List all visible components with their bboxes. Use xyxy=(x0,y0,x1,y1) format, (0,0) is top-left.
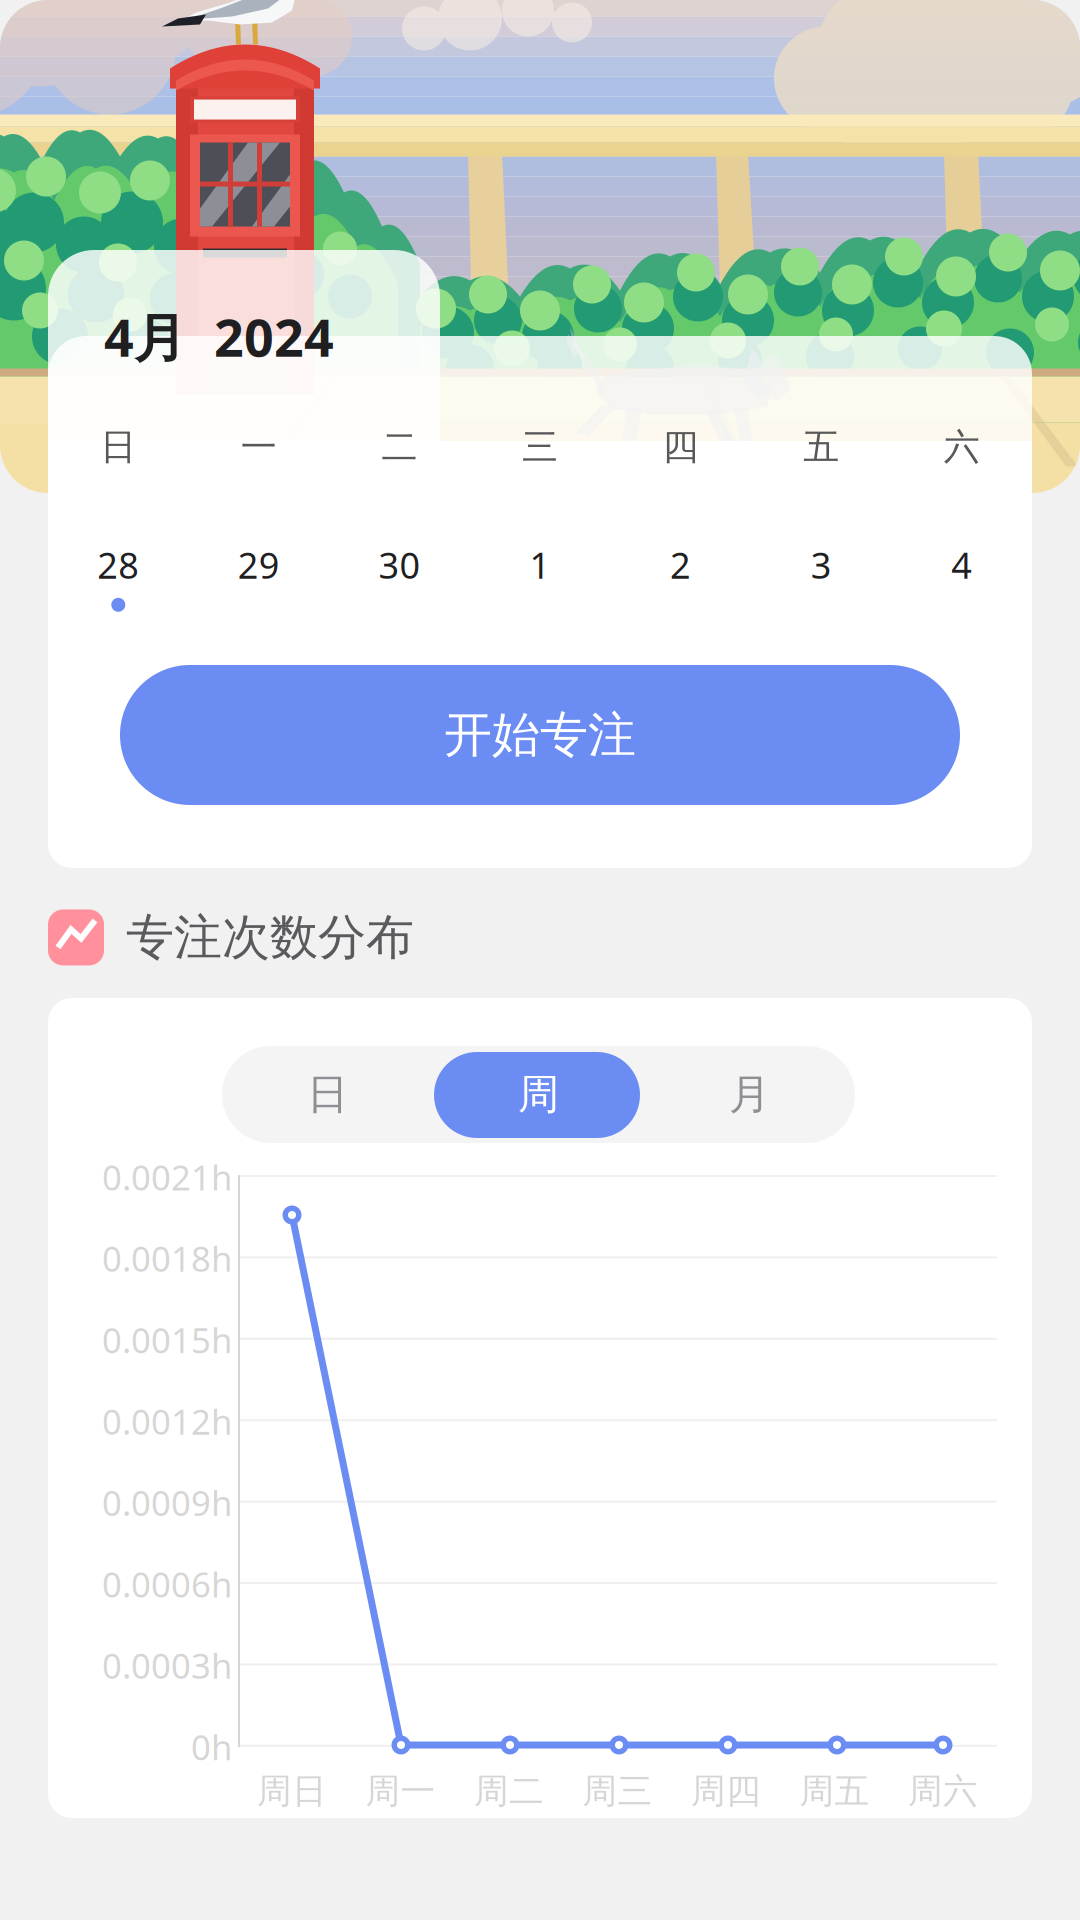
staticText: 0.0015h xyxy=(102,1317,232,1363)
button[interactable]: 周 xyxy=(433,1046,644,1143)
staticText: 3 xyxy=(811,541,832,589)
staticText: 四 xyxy=(663,425,699,469)
staticText: 4 xyxy=(951,541,972,589)
staticText: 0.0021h xyxy=(102,1154,232,1200)
staticText: 三 xyxy=(522,425,558,469)
button[interactable]: 开始专注 xyxy=(120,665,960,805)
staticText: 专注次数分布 xyxy=(126,908,414,967)
staticText: 0.0012h xyxy=(102,1398,232,1444)
staticText: 日 xyxy=(307,1069,348,1120)
staticText: 28 xyxy=(97,541,139,589)
staticText: 0h xyxy=(191,1724,232,1770)
staticText: 0.0018h xyxy=(102,1235,232,1281)
staticText: 五 xyxy=(803,425,839,469)
staticText: 2 xyxy=(670,541,691,589)
staticText: 30 xyxy=(378,541,420,589)
staticText: 六 xyxy=(944,425,980,469)
staticText: 周二 xyxy=(474,1770,544,1813)
staticText: 周六 xyxy=(908,1770,978,1813)
staticText: 周日 xyxy=(257,1770,327,1813)
staticText: 4月 2024 xyxy=(104,302,334,371)
staticText: 周四 xyxy=(691,1770,761,1813)
staticText: 月 xyxy=(729,1069,770,1120)
button[interactable]: 月 xyxy=(644,1046,855,1143)
staticText: 0.0003h xyxy=(102,1642,232,1688)
staticText: 周 xyxy=(518,1069,559,1120)
staticText: 日 xyxy=(100,425,136,469)
staticText: 开始专注 xyxy=(444,705,636,764)
staticText: 0.0006h xyxy=(102,1561,232,1607)
staticText: 周三 xyxy=(582,1770,652,1813)
staticText: 29 xyxy=(238,541,280,589)
staticText: 一 xyxy=(241,425,277,469)
staticText: 周一 xyxy=(365,1770,435,1813)
button[interactable]: 日 xyxy=(222,1046,433,1143)
staticText: 0.0009h xyxy=(102,1480,232,1526)
staticText: 周五 xyxy=(799,1770,869,1813)
staticText: 二 xyxy=(381,425,417,469)
staticText: 1 xyxy=(529,541,550,589)
